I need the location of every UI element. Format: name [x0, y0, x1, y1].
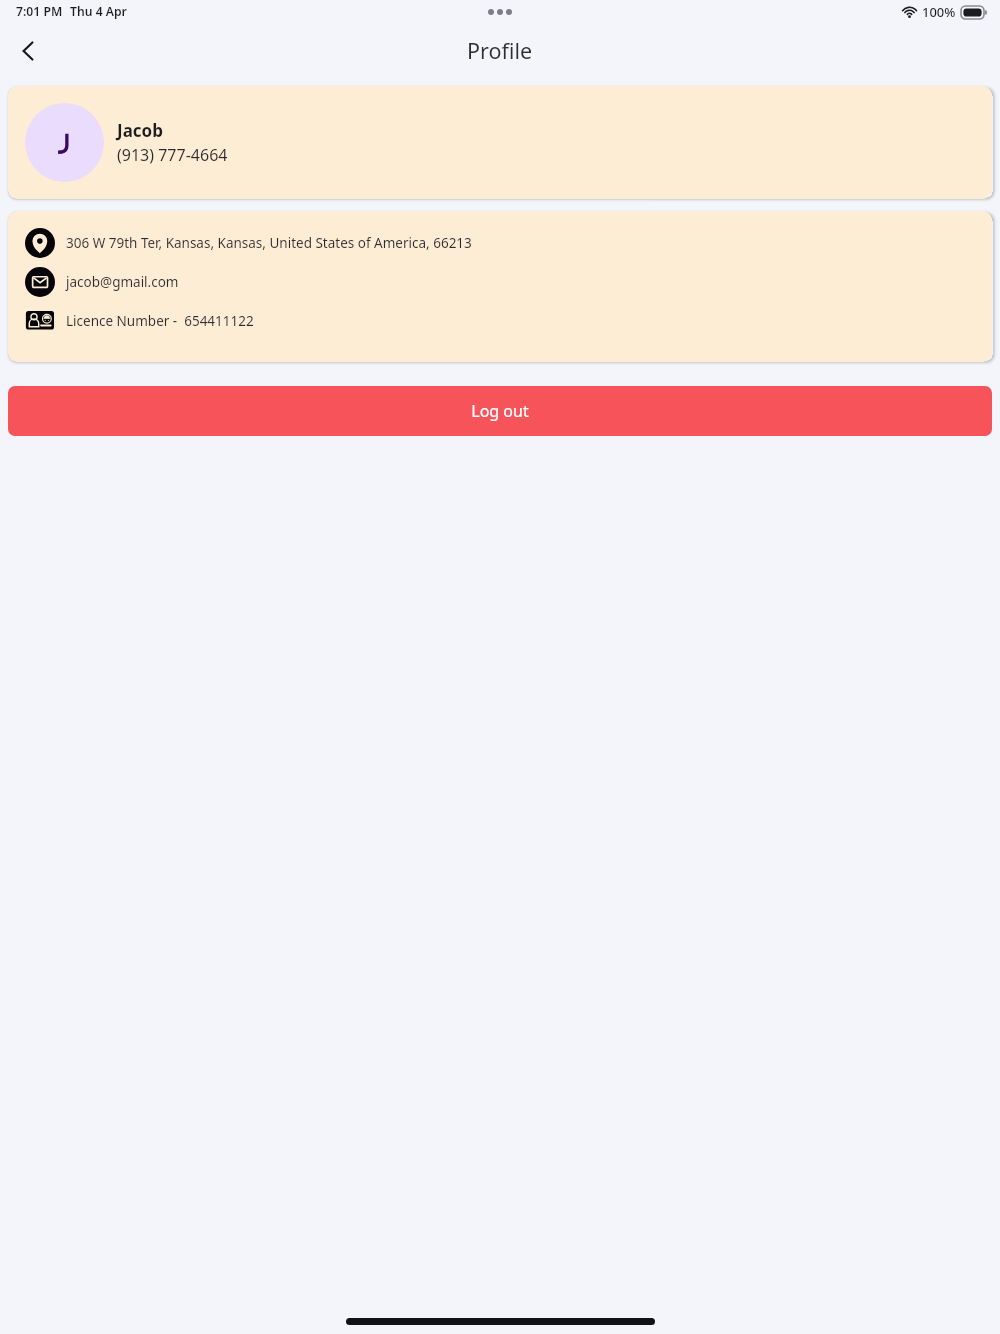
staticText: 7:01 PM: [16, 3, 63, 20]
staticText: Licence Number - 654411122: [66, 312, 254, 330]
staticText: Log out: [471, 400, 529, 422]
staticText: jacob@gmail.com: [66, 273, 179, 291]
button[interactable]: 306 W 79th Ter, Kansas, Kansas, United S…: [25, 228, 976, 258]
staticText: (913) 777-4664: [117, 144, 228, 166]
button[interactable]: Jacob: [8, 86, 992, 199]
button[interactable]: jacob@gmail.com: [25, 267, 976, 297]
button[interactable]: Back: [6, 29, 50, 73]
staticText: Jacob: [117, 119, 163, 142]
staticText: 306 W 79th Ter, Kansas, Kansas, United S…: [66, 234, 472, 252]
button[interactable]: Licence Number - 654411122: [25, 306, 976, 336]
button[interactable]: Log out: [8, 386, 992, 436]
staticText: Profile: [467, 36, 533, 65]
staticText: Thu 4 Apr: [70, 3, 127, 20]
staticText: 100%: [922, 3, 956, 21]
